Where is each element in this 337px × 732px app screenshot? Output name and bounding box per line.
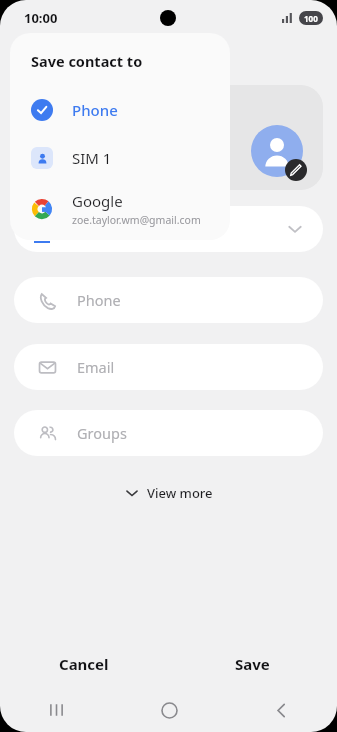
staticText: Save (235, 654, 270, 674)
button[interactable]: Recents (0, 688, 113, 732)
button[interactable]: SIM 1 (10, 136, 230, 180)
staticText: zoe.taylor.wm@gmail.com (72, 213, 201, 227)
button[interactable]: Contact photo (251, 125, 303, 177)
button[interactable]: Home (113, 688, 225, 732)
staticText: Groups (77, 423, 127, 443)
staticText: Phone (72, 100, 118, 120)
button[interactable]: Phone (14, 277, 323, 323)
button[interactable] (14, 206, 323, 252)
staticText: Cancel (59, 654, 109, 674)
button[interactable]: Groups (14, 410, 323, 456)
button[interactable]: Email (14, 344, 323, 390)
staticText: 100 (304, 13, 318, 24)
staticText: Phone (77, 290, 121, 310)
staticText: Google (72, 191, 123, 211)
button[interactable]: Back (225, 688, 337, 732)
staticText: SIM 1 (72, 148, 112, 168)
staticText: View more (147, 484, 213, 502)
staticText: Save contact to (31, 51, 143, 71)
button[interactable]: Save (168, 644, 337, 684)
button[interactable]: Google (10, 184, 230, 234)
button[interactable]: Edit photo (285, 159, 307, 181)
staticText: 10:00 (24, 9, 58, 27)
button[interactable]: Phone (10, 88, 230, 132)
staticText: Email (77, 357, 115, 377)
button[interactable]: View more (0, 478, 337, 508)
button[interactable]: Cancel (0, 644, 168, 684)
